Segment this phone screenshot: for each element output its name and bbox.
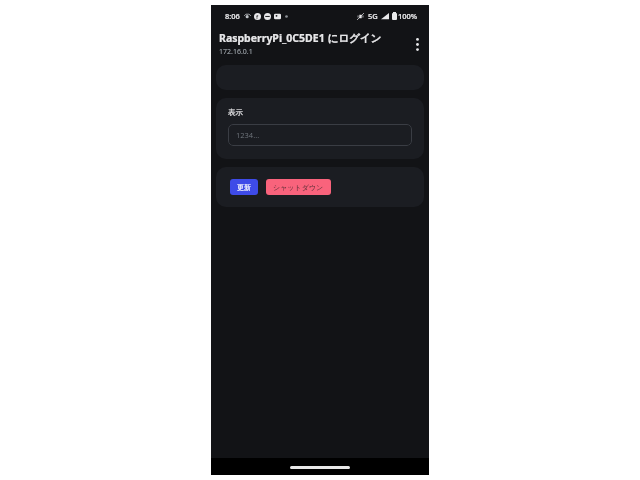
staticText: 表示	[228, 108, 243, 117]
staticText: RaspberryPi_0C5DE1 にログイン	[219, 31, 382, 45]
staticText: 5G	[368, 11, 378, 21]
staticText: シャットダウン	[273, 183, 324, 192]
staticText: 更新	[237, 183, 251, 192]
button[interactable]: 1234...	[228, 124, 412, 146]
button[interactable]: More options	[405, 32, 429, 56]
button[interactable]: 更新	[230, 179, 258, 195]
staticText: 8:06	[225, 11, 240, 21]
staticText: 1234...	[236, 130, 260, 140]
staticText: f	[256, 13, 259, 20]
button[interactable]: シャットダウン	[266, 179, 331, 195]
staticText: 172.16.0.1	[219, 47, 253, 57]
staticText: 100%	[398, 11, 418, 21]
